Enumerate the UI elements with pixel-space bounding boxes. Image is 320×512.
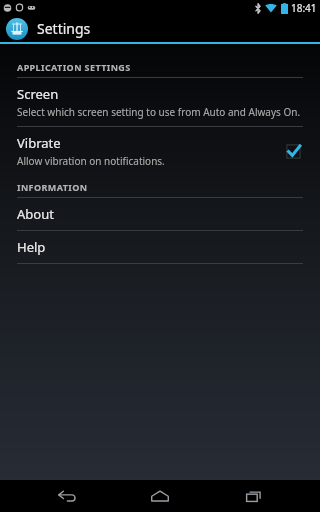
button[interactable]: Help bbox=[0, 231, 320, 263]
button[interactable]: Vibrate bbox=[0, 127, 320, 175]
staticText: Vibrate bbox=[17, 134, 61, 152]
staticText: Settings bbox=[37, 19, 91, 38]
button[interactable]: Home bbox=[133, 480, 187, 512]
button[interactable]: Settings bbox=[0, 15, 320, 42]
staticText: About bbox=[17, 205, 54, 223]
button[interactable]: Screen bbox=[0, 78, 320, 126]
button[interactable]: Vibrate toggle bbox=[283, 141, 303, 161]
staticText: Select which screen setting to use from … bbox=[17, 105, 301, 119]
button[interactable]: About bbox=[0, 198, 320, 230]
button[interactable]: Back bbox=[40, 480, 94, 512]
staticText: APPLICATION SETTINGS bbox=[17, 61, 131, 73]
button[interactable]: Recent apps bbox=[227, 480, 281, 512]
staticText: Help bbox=[17, 238, 46, 256]
staticText: Screen bbox=[17, 85, 59, 103]
staticText: 18:41 bbox=[291, 1, 317, 15]
staticText: Allow vibration on notifications. bbox=[17, 154, 165, 168]
staticText: INFORMATION bbox=[17, 181, 88, 193]
